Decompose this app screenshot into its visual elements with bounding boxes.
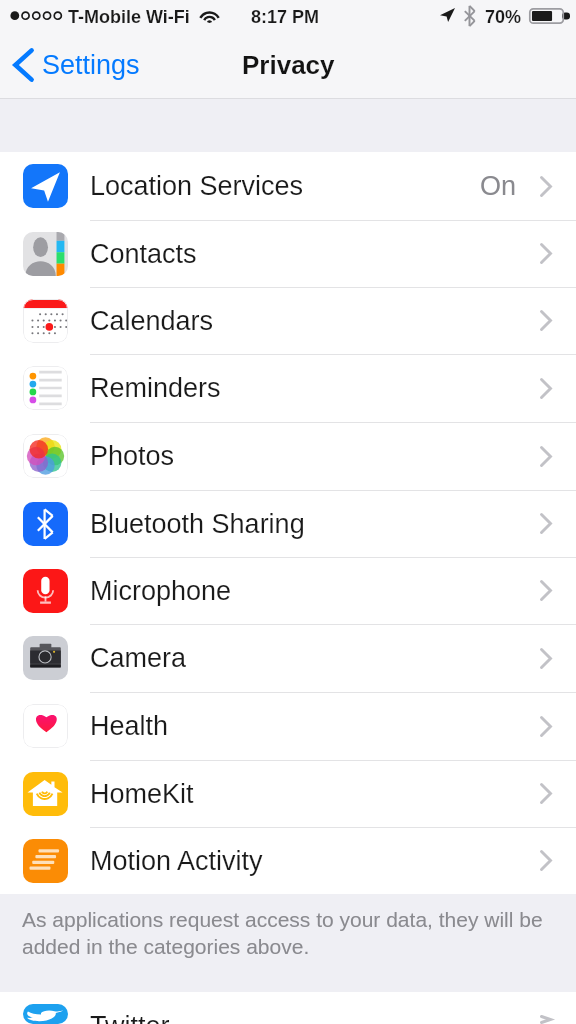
- staticText: Motion Activity: [90, 846, 263, 876]
- button[interactable]: Motion Activity: [0, 827, 576, 894]
- staticText: Twitter: [90, 1011, 170, 1024]
- staticText: HomeKit: [90, 779, 194, 809]
- button[interactable]: Contacts: [0, 220, 576, 287]
- staticText: Health: [90, 711, 169, 741]
- staticText: T-Mobile Wi-Fi: [68, 7, 190, 27]
- button[interactable]: Twitter: [0, 992, 576, 1024]
- staticText: Microphone: [90, 576, 232, 606]
- staticText: As applications request access to your d…: [22, 908, 554, 958]
- staticText: Photos: [90, 441, 175, 471]
- button[interactable]: Microphone: [0, 557, 576, 624]
- staticText: Bluetooth Sharing: [90, 509, 305, 539]
- staticText: Location Services: [90, 171, 304, 201]
- staticText: 70%: [485, 7, 522, 27]
- button[interactable]: Photos: [0, 422, 576, 490]
- button[interactable]: HomeKit: [0, 760, 576, 827]
- button[interactable]: Settings: [0, 44, 152, 93]
- button[interactable]: Health: [0, 692, 576, 760]
- staticText: Privacy: [242, 50, 335, 79]
- staticText: On: [480, 171, 517, 201]
- button[interactable]: Camera: [0, 624, 576, 692]
- staticText: 8:17 PM: [251, 7, 320, 27]
- button[interactable]: Calendars: [0, 287, 576, 354]
- staticText: Calendars: [90, 306, 214, 336]
- staticText: Contacts: [90, 239, 197, 269]
- staticText: Reminders: [90, 373, 221, 403]
- staticText: Camera: [90, 643, 187, 673]
- button[interactable]: Reminders: [0, 354, 576, 422]
- staticText: Settings: [42, 50, 140, 80]
- button[interactable]: Bluetooth Sharing: [0, 490, 576, 557]
- button[interactable]: Location Services: [0, 152, 576, 220]
